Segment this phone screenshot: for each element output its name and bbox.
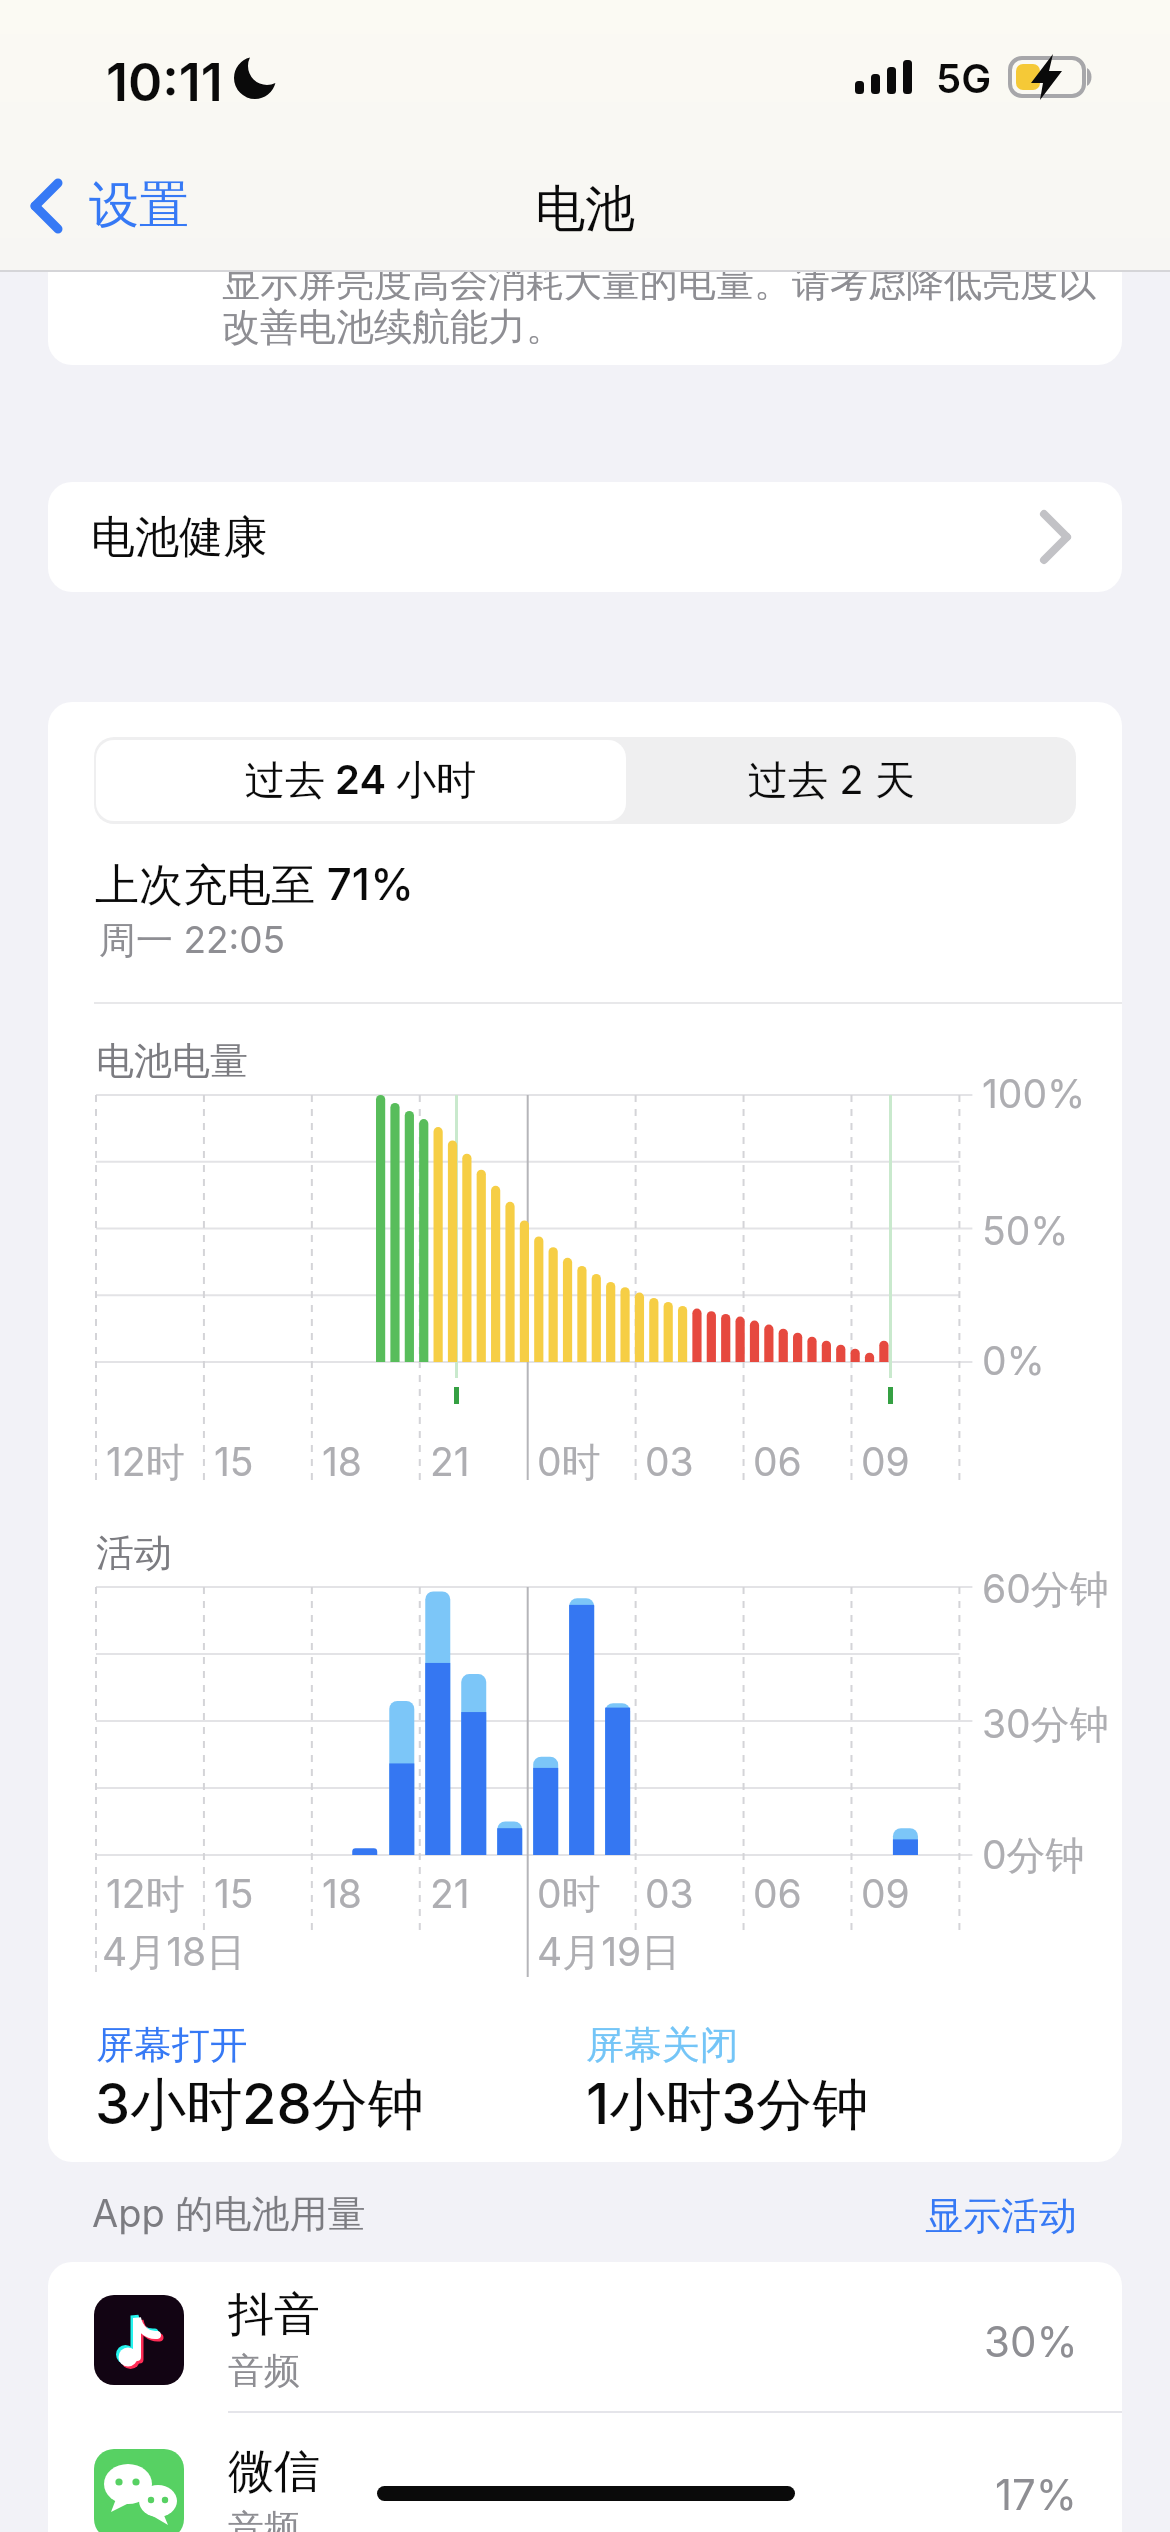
staticText: 周一 22:05 <box>99 917 286 964</box>
staticText: App 的电池用量 <box>92 2190 366 2238</box>
button[interactable] <box>20 170 240 242</box>
staticText: 03 <box>645 1870 694 1917</box>
staticText: 60分钟 <box>982 1565 1109 1614</box>
staticText: 电池电量 <box>96 1037 248 1085</box>
staticText: 18 <box>322 1870 362 1917</box>
staticText: 100% <box>982 1070 1086 1117</box>
staticText: 屏幕关闭 <box>586 2021 738 2069</box>
staticText: 0时 <box>537 1438 601 1487</box>
button[interactable]: 过去 2 天 <box>628 740 1034 821</box>
staticText: 过去 2 天 <box>748 755 915 806</box>
staticText: 0% <box>982 1337 1045 1384</box>
staticText: 17% <box>995 2469 1078 2520</box>
staticText: 显示屏亮度高会消耗大量的电量。请考虑降低亮度以 <box>222 259 1096 307</box>
button[interactable] <box>48 2413 1122 2532</box>
button[interactable] <box>48 2262 1122 2412</box>
staticText: 活动 <box>96 1529 172 1577</box>
staticText: 15 <box>214 1438 254 1485</box>
staticText: 06 <box>753 1438 802 1485</box>
staticText: 06 <box>753 1870 802 1917</box>
button[interactable] <box>48 482 1122 592</box>
staticText: 电池健康 <box>91 510 267 565</box>
staticText: 10:11 <box>106 51 223 114</box>
staticText: 4月19日 <box>537 1928 681 1977</box>
staticText: 12时 <box>106 1438 185 1487</box>
staticText: 4月18日 <box>102 1928 246 1977</box>
staticText: 30分钟 <box>982 1700 1109 1749</box>
staticText: 0时 <box>537 1870 601 1919</box>
staticText: 09 <box>861 1438 910 1485</box>
staticText: 21 <box>430 1870 470 1917</box>
staticText: 5G <box>936 54 992 102</box>
staticText: 音频 <box>228 2505 300 2532</box>
staticText: 30% <box>984 2316 1078 2367</box>
staticText: 抖音 <box>228 2286 320 2344</box>
staticText: 0分钟 <box>982 1831 1085 1880</box>
staticText: 设置 <box>89 174 189 237</box>
staticText: 3小时28分钟 <box>95 2070 424 2141</box>
staticText: 显示活动 <box>925 2192 1077 2240</box>
staticText: 微信 <box>228 2443 320 2501</box>
staticText: 12时 <box>106 1870 185 1919</box>
staticText: 18 <box>322 1438 362 1485</box>
staticText: 21 <box>430 1438 470 1485</box>
staticText: 50% <box>982 1207 1069 1254</box>
staticText: 电池 <box>535 178 635 241</box>
staticText: 15 <box>214 1870 254 1917</box>
staticText: 上次充电至 71% <box>95 857 414 913</box>
button[interactable] <box>876 2185 1076 2231</box>
staticText: 过去 24 小时 <box>245 755 477 806</box>
button[interactable] <box>96 740 626 821</box>
staticText: 09 <box>861 1870 910 1917</box>
staticText: 改善电池续航能力。 <box>222 303 564 351</box>
staticText: 音频 <box>228 2348 300 2393</box>
staticText: 1小时3分钟 <box>586 2070 869 2141</box>
staticText: 屏幕打开 <box>96 2021 248 2069</box>
staticText: 03 <box>645 1438 694 1485</box>
